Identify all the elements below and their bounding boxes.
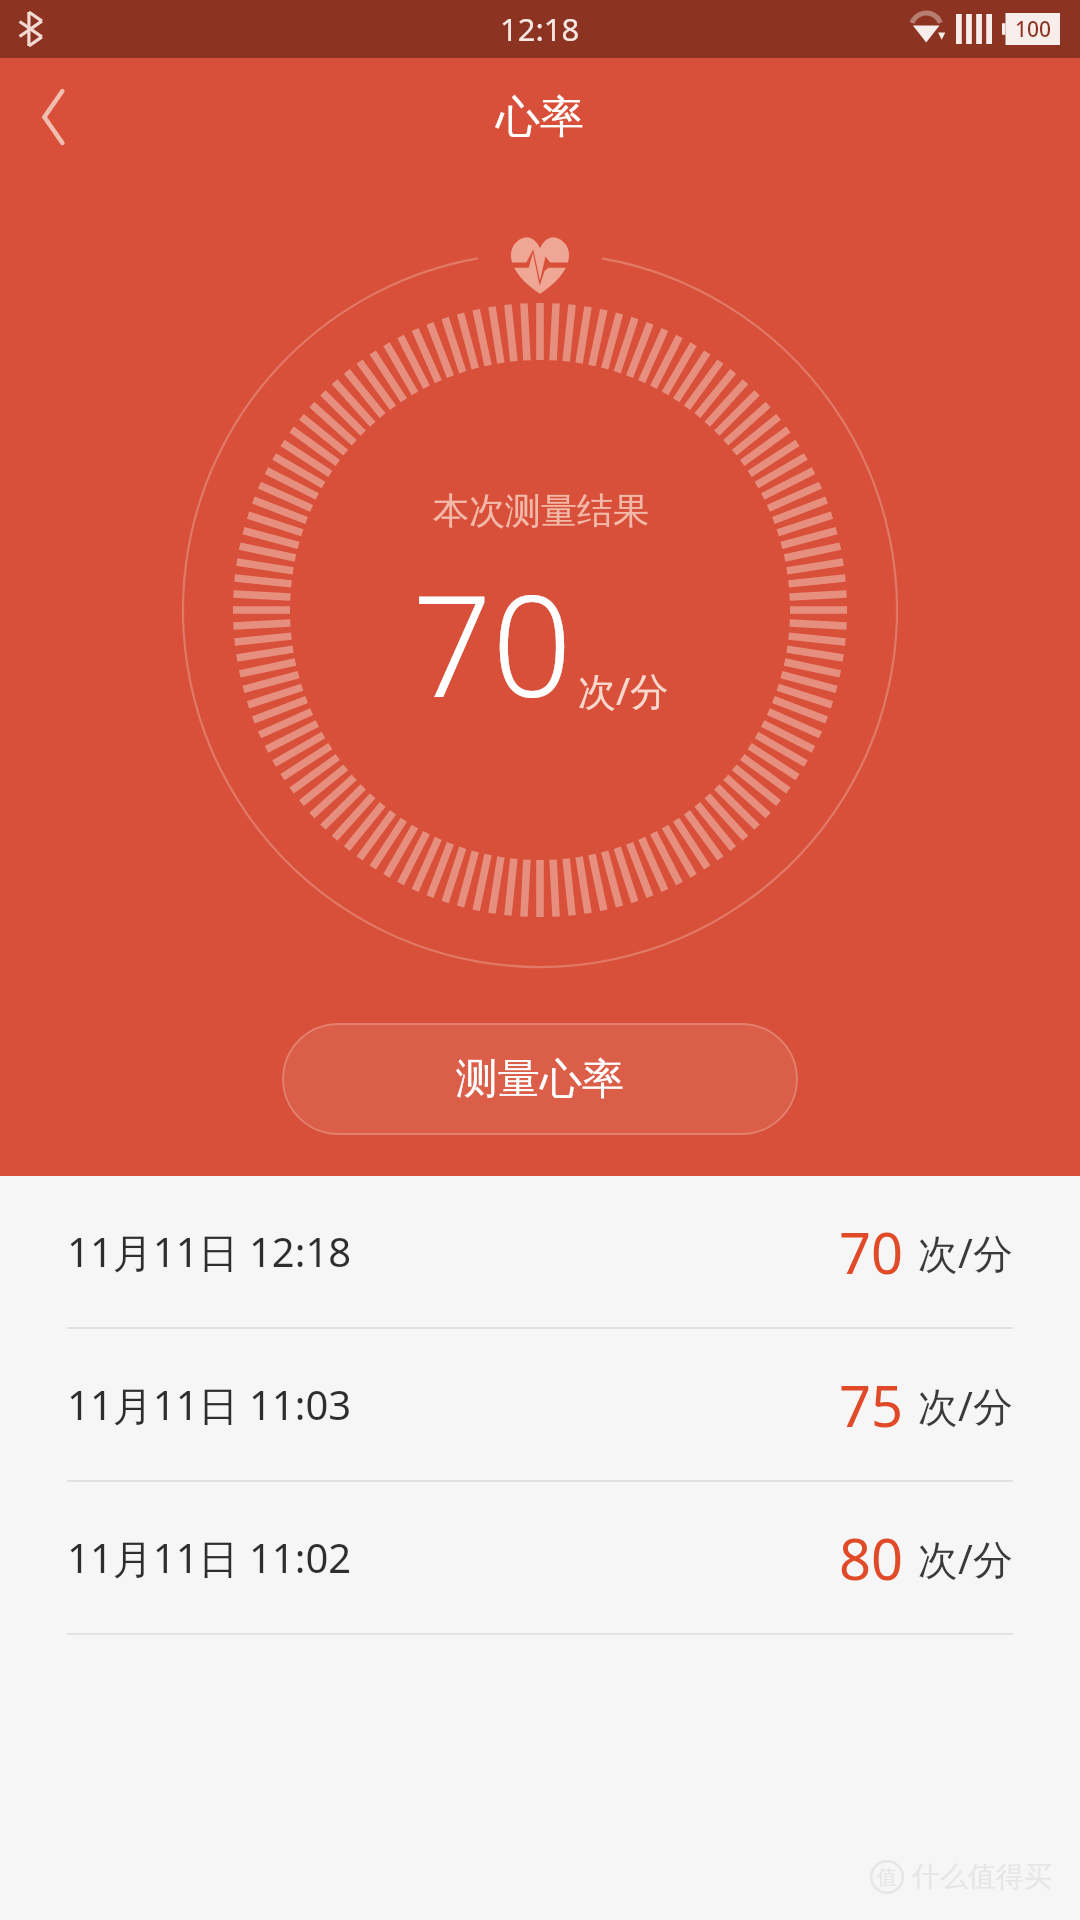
staticText: 11月11日 12:18 — [67, 1224, 352, 1279]
staticText: 70 — [412, 547, 572, 738]
button[interactable]: Back — [0, 63, 108, 171]
staticText: 什么值得买 — [912, 1859, 1052, 1894]
staticText: 次/分 — [578, 664, 669, 716]
staticText: 100 — [1015, 15, 1052, 44]
staticText: 80 — [839, 1520, 904, 1596]
staticText: 12:18 — [500, 8, 580, 50]
staticText: 心率 — [496, 90, 584, 145]
staticText: 75 — [839, 1367, 904, 1443]
button[interactable]: 11月11日 11:03 — [0, 1329, 1080, 1480]
button[interactable]: 11月11日 11:02 — [0, 1482, 1080, 1633]
button[interactable]: 11月11日 12:18 — [0, 1176, 1080, 1327]
staticText: 11月11日 11:02 — [67, 1530, 352, 1585]
staticText: 70 — [839, 1214, 904, 1290]
staticText: 值 — [877, 1865, 897, 1890]
staticText: 本次测量结果 — [433, 488, 649, 533]
staticText: 次/分 — [918, 1531, 1013, 1586]
staticText: 测量心率 — [456, 1053, 624, 1106]
staticText: 次/分 — [918, 1378, 1013, 1433]
staticText: 11月11日 11:03 — [67, 1377, 352, 1432]
button[interactable]: 测量心率 — [282, 1023, 798, 1135]
staticText: 次/分 — [918, 1225, 1013, 1280]
